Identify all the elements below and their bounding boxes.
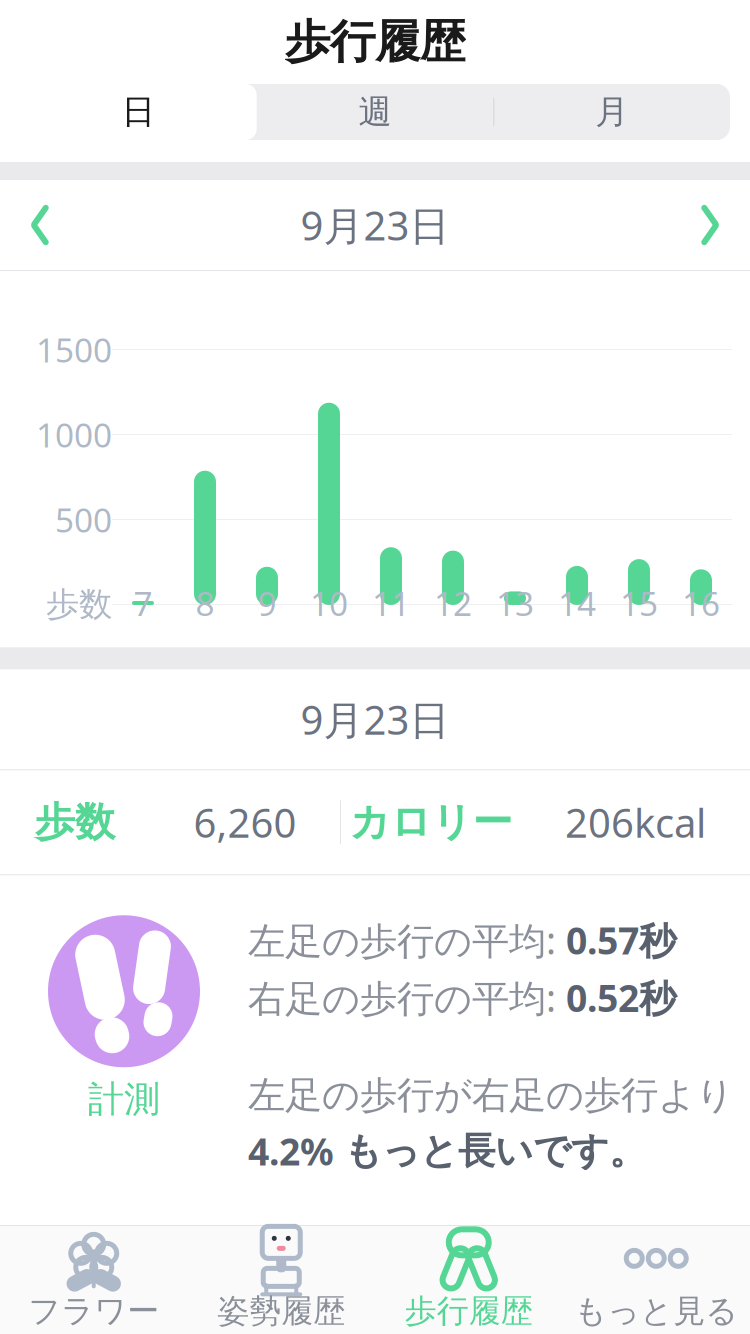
staticText: 歩行履歴	[405, 1291, 533, 1331]
staticText: 16	[682, 581, 720, 625]
staticText: 4.2%	[248, 1126, 344, 1176]
staticText: 週	[358, 91, 391, 132]
staticText: 月	[595, 91, 628, 132]
staticText: もっと見る	[574, 1291, 738, 1331]
staticText: フラワー	[28, 1291, 159, 1331]
staticText: 9月23日	[300, 198, 449, 251]
staticText: 13	[496, 581, 534, 625]
staticText: 12	[434, 581, 472, 625]
staticText: 右足の歩行の平均:	[248, 973, 566, 1022]
staticText: 1000	[36, 412, 112, 457]
staticText: 8	[195, 581, 214, 625]
staticText: 500	[55, 497, 112, 542]
staticText: 10	[310, 581, 348, 625]
button[interactable]: フラワー	[0, 1226, 187, 1334]
staticText: 15	[620, 581, 658, 625]
staticText: 左足の歩行が右足の歩行より	[248, 1072, 734, 1118]
staticText: 左足の歩行の平均:	[248, 915, 566, 965]
staticText: 歩数	[46, 584, 112, 625]
staticText: 11	[372, 581, 410, 625]
staticText: 7	[133, 581, 152, 625]
staticText: 歩行履歴	[285, 14, 465, 70]
staticText: もっと長いです。	[344, 1128, 646, 1174]
staticText: 1500	[36, 327, 112, 372]
button[interactable]: もっと見る	[562, 1226, 750, 1334]
staticText: 0.52秒	[566, 973, 676, 1022]
staticText: 9月23日	[300, 693, 449, 746]
button[interactable]: 前の日	[0, 180, 80, 270]
staticText: 姿勢履歴	[217, 1291, 345, 1331]
button[interactable]: 姿勢履歴	[187, 1226, 375, 1334]
button[interactable]: 次の日	[670, 180, 750, 270]
staticText: カロリー	[349, 798, 512, 847]
staticText: 206kcal	[565, 796, 706, 849]
button[interactable]: 週	[257, 84, 493, 140]
staticText: 歩数	[35, 798, 115, 847]
staticText: 9	[257, 581, 276, 625]
button[interactable]: 月	[493, 84, 730, 140]
staticText: 日	[122, 91, 155, 132]
staticText: 6,260	[193, 796, 296, 849]
button[interactable]: 日	[20, 84, 257, 140]
button[interactable]: 歩行履歴	[375, 1226, 562, 1334]
staticText: 14	[558, 581, 596, 625]
staticText: 計測	[88, 1077, 160, 1121]
staticText: 0.57秒	[566, 915, 676, 965]
